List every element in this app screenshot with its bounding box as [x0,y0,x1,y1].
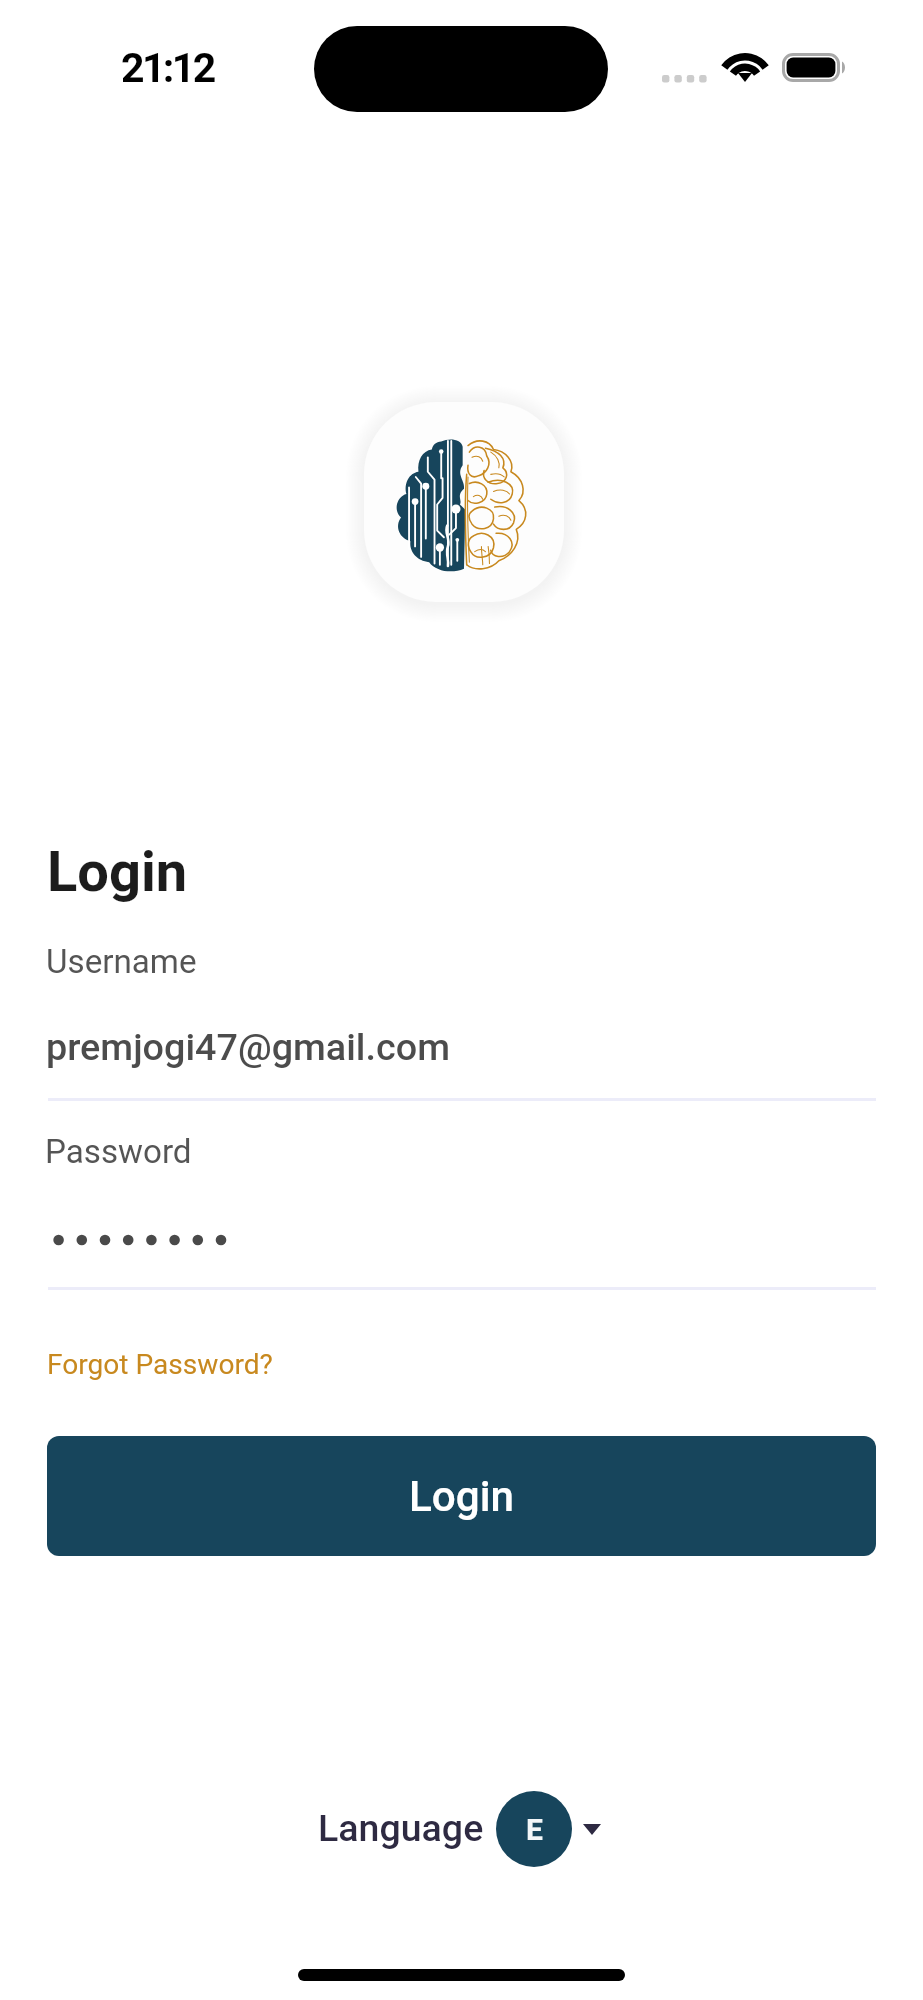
button[interactable]: Password [48,1120,876,1290]
other: Battery full [782,53,848,83]
button[interactable]: Login [47,1436,876,1556]
staticText: Forgot Password? [47,1348,273,1381]
button[interactable]: Language [318,1790,601,1868]
other: Wi-Fi [721,48,769,84]
staticText: premjogi47@gmail.com [46,1025,451,1069]
button[interactable]: Username [48,930,876,1101]
staticText: Login [47,839,188,905]
staticText: Password [45,1132,192,1171]
staticText: Language [318,1806,484,1850]
staticText: Login [409,1472,515,1521]
staticText: 21:12 [121,44,214,92]
staticText: E [526,1812,543,1847]
button[interactable]: Forgot Password? [47,1348,273,1381]
staticText: Username [46,942,197,981]
other: Change language [583,1824,601,1835]
